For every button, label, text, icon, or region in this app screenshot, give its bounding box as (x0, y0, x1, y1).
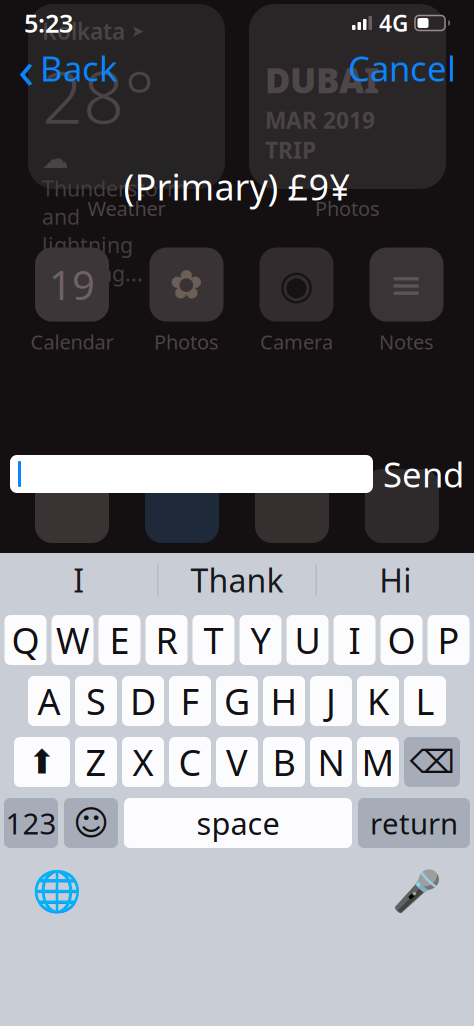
button[interactable]: ‹ (6, 29, 130, 107)
staticText: P (437, 616, 459, 664)
staticText: W (56, 616, 89, 664)
staticText: F (180, 677, 199, 725)
button[interactable]: Hi (317, 553, 474, 607)
staticText: I (73, 559, 84, 601)
staticText: M (361, 738, 394, 786)
staticText: Notes (379, 329, 434, 355)
button[interactable]: X (122, 737, 164, 787)
button[interactable]: I (0, 553, 157, 607)
staticText: 🌐 (32, 868, 82, 914)
staticText: ☺ (73, 803, 109, 843)
button[interactable]: N (310, 737, 352, 787)
staticText: 123 (5, 803, 56, 842)
staticText: ‹ (18, 33, 35, 103)
button[interactable]: P (427, 615, 469, 665)
staticText: ⬆ (28, 743, 56, 781)
staticText: ✿ (169, 262, 203, 307)
staticText: G (224, 677, 250, 725)
staticText: V (226, 738, 248, 786)
button[interactable]: F (169, 676, 211, 726)
staticText: Photos (315, 195, 380, 222)
button[interactable]: Y (239, 615, 281, 665)
staticText: Kolkata (42, 16, 125, 46)
button[interactable]: R (145, 615, 187, 665)
staticText: ➤ (131, 22, 144, 40)
staticText: T (203, 616, 223, 664)
button[interactable]: I (333, 615, 375, 665)
staticText: N (317, 738, 344, 786)
button[interactable]: E (98, 615, 140, 665)
staticText: A (37, 677, 60, 725)
button[interactable]: M (357, 737, 399, 787)
staticText: Hi (379, 559, 411, 601)
button[interactable]: W (51, 615, 93, 665)
staticText: J (326, 677, 336, 725)
staticText: return (370, 803, 458, 842)
staticText: lightning warning... (42, 231, 143, 287)
button[interactable]: Send (373, 445, 474, 503)
button[interactable]: Cancel (336, 41, 468, 95)
staticText: space (196, 803, 279, 843)
button[interactable]: Thank (158, 553, 316, 607)
button[interactable]: L (404, 676, 446, 726)
button[interactable]: Next keyboard (24, 860, 90, 922)
button[interactable]: U (286, 615, 328, 665)
button[interactable]: K (357, 676, 399, 726)
staticText: B (272, 738, 295, 786)
staticText: Cancel (348, 45, 456, 91)
staticText: Calendar (30, 329, 113, 355)
staticText: Thunderstorm and (42, 174, 187, 231)
staticText: Q (11, 616, 39, 664)
button[interactable]: Shift (14, 737, 70, 787)
staticText: U (294, 616, 320, 664)
button[interactable]: V (216, 737, 258, 787)
button[interactable]: Emoji (64, 798, 118, 848)
button[interactable]: Z (75, 737, 117, 787)
staticText: Y (250, 616, 270, 664)
staticText: ◉ (279, 262, 314, 307)
button[interactable]: H (263, 676, 305, 726)
button[interactable]: J (310, 676, 352, 726)
staticText: DUBAI (265, 57, 379, 103)
button[interactable]: Delete (404, 737, 460, 787)
staticText: 🎤 (392, 868, 442, 914)
button[interactable]: O (380, 615, 422, 665)
staticText: O (387, 616, 415, 664)
staticText: 5:23 (24, 6, 73, 40)
staticText: I (348, 616, 360, 664)
staticText: 28° (42, 48, 155, 144)
staticText: Thank (190, 559, 283, 601)
staticText: Weather (87, 195, 165, 222)
staticText: R (155, 616, 177, 664)
button[interactable]: Dictation (384, 860, 450, 922)
staticText: ☁ (42, 144, 69, 174)
button[interactable]: C (169, 737, 211, 787)
staticText: 4G (379, 8, 408, 38)
button[interactable]: Q (4, 615, 46, 665)
staticText: ⌫ (409, 744, 454, 780)
button[interactable]: G (216, 676, 258, 726)
staticText: E (109, 616, 129, 664)
staticText: (Primary) £9¥ (123, 163, 350, 210)
button[interactable]: A (28, 676, 70, 726)
staticText: H (270, 677, 297, 725)
button[interactable]: B (263, 737, 305, 787)
staticText: Camera (260, 329, 333, 355)
button[interactable]: T (192, 615, 234, 665)
staticText: S (86, 677, 106, 725)
button[interactable]: return (358, 798, 470, 848)
staticText: MAR 2019 TRIP (265, 105, 375, 165)
staticText: D (130, 677, 156, 725)
staticText: Photos (154, 329, 219, 355)
button[interactable]: D (122, 676, 164, 726)
button[interactable]: 123 (4, 798, 58, 848)
staticText: L (415, 677, 434, 725)
button[interactable]: S (75, 676, 117, 726)
staticText: ≡ (389, 262, 423, 307)
staticText: 19 (49, 258, 95, 311)
button[interactable]: space (124, 798, 352, 848)
staticText: C (178, 738, 201, 786)
staticText: K (367, 677, 389, 725)
staticText: Z (85, 738, 106, 786)
staticText: Send (383, 451, 464, 497)
